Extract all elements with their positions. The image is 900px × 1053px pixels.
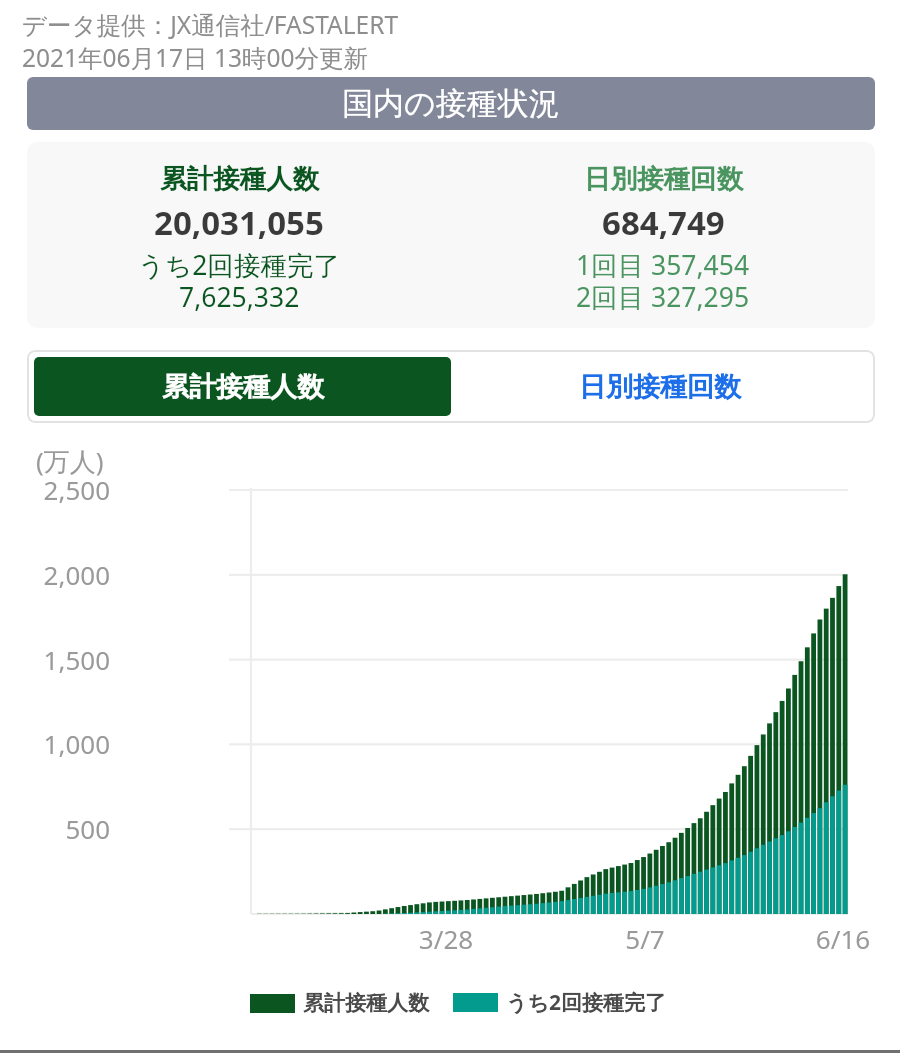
button[interactable]: 日別接種回数	[451, 357, 868, 416]
button[interactable]: 累計接種人数	[34, 357, 451, 416]
staticText: うち2回接種完了	[138, 247, 340, 283]
staticText: 2,500	[0, 472, 110, 507]
staticText: 1回目 357,454	[576, 247, 750, 283]
staticText: 3/28	[376, 921, 516, 956]
staticText: データ提供：JX通信社/FASTALERT	[22, 8, 399, 41]
staticText: 20,031,055	[154, 200, 324, 245]
staticText: 684,749	[602, 200, 725, 245]
staticText: 累計接種人数	[162, 370, 324, 404]
staticText: 6/16	[773, 921, 900, 956]
other: 累計接種人数の推移グラフ	[0, 0, 900, 1053]
staticText: 2,000	[0, 557, 110, 592]
staticText: 累計接種人数	[303, 990, 429, 1016]
staticText: 1,000	[0, 726, 110, 761]
staticText: 500	[0, 811, 110, 846]
button[interactable]: うち2回接種完了	[453, 988, 666, 1017]
staticText: 1,500	[0, 642, 110, 677]
staticText: うち2回接種完了	[506, 988, 666, 1017]
staticText: 累計接種人数	[160, 162, 319, 195]
staticText: 国内の接種状況	[342, 84, 560, 123]
button[interactable]: 国内の接種状況	[27, 77, 875, 130]
staticText: 7,625,332	[179, 279, 300, 315]
staticText: 2021年06月17日 13時00分更新	[22, 41, 369, 74]
staticText: (万人)	[36, 443, 104, 479]
staticText: 2回目 327,295	[576, 279, 750, 315]
staticText: 5/7	[575, 921, 715, 956]
staticText: 日別接種回数	[584, 162, 743, 195]
staticText: 日別接種回数	[579, 370, 741, 404]
button[interactable]: 累計接種人数	[250, 990, 429, 1016]
